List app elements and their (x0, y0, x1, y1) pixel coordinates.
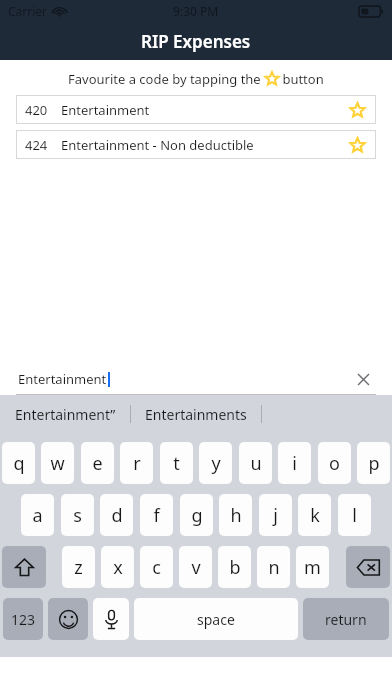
button[interactable]: g (180, 494, 213, 536)
staticText: Entertainments (145, 405, 247, 424)
button[interactable]: Favourite (347, 100, 367, 120)
button[interactable]: Backspace (346, 546, 390, 588)
staticText: d (111, 503, 123, 528)
button[interactable]: Dictation (93, 598, 129, 640)
staticText: RIP Expenses (141, 30, 251, 53)
staticText: r (133, 451, 141, 476)
button[interactable]: c (140, 546, 173, 588)
staticText: Entertainment (61, 101, 150, 119)
button[interactable]: n (257, 546, 290, 588)
button[interactable]: e (81, 442, 114, 484)
staticText: l (352, 503, 357, 528)
staticText: space (197, 610, 235, 629)
button[interactable]: p (357, 442, 390, 484)
button[interactable]: a (21, 494, 54, 536)
staticText: Favourite a code by tapping the (68, 70, 265, 88)
button[interactable]: 424 (16, 130, 376, 159)
staticText: a (32, 503, 43, 528)
button[interactable]: i (278, 442, 311, 484)
staticText: z (74, 555, 83, 580)
button[interactable]: space (134, 598, 298, 640)
staticText: button (279, 70, 324, 88)
staticText: 424 (25, 136, 48, 154)
button[interactable]: Entertainments (131, 395, 261, 433)
button[interactable]: Emoji (48, 598, 88, 640)
button[interactable]: x (101, 546, 134, 588)
button[interactable]: Entertainment” (0, 395, 130, 433)
staticText: 420 (25, 101, 48, 119)
staticText: b (229, 555, 241, 580)
staticText: q (13, 451, 25, 476)
button[interactable]: b (218, 546, 251, 588)
staticText: u (250, 451, 262, 476)
button[interactable]: l (338, 494, 371, 536)
button[interactable]: u (239, 442, 272, 484)
button[interactable]: f (140, 494, 173, 536)
button[interactable]: Shift (2, 546, 46, 588)
staticText: Entertainment” (15, 405, 116, 424)
staticText: t (173, 451, 180, 476)
button[interactable]: Favourite (347, 135, 367, 155)
staticText: j (273, 503, 278, 528)
staticText: k (310, 503, 320, 528)
button[interactable]: w (41, 442, 74, 484)
staticText: g (191, 503, 203, 528)
button[interactable]: q (2, 442, 35, 484)
staticText: 123 (11, 610, 36, 629)
button[interactable]: s (61, 494, 94, 536)
staticText: Carrier (8, 3, 48, 19)
button[interactable]: z (62, 546, 95, 588)
button[interactable]: o (318, 442, 351, 484)
staticText: w (50, 451, 65, 476)
staticText: h (230, 503, 242, 528)
staticText: y (211, 451, 221, 476)
staticText: p (368, 451, 380, 476)
staticText: return (325, 610, 367, 629)
button[interactable]: j (259, 494, 292, 536)
staticText: e (92, 451, 103, 476)
staticText: o (329, 451, 340, 476)
button[interactable]: t (160, 442, 193, 484)
button[interactable]: d (100, 494, 133, 536)
button[interactable]: v (179, 546, 212, 588)
button[interactable]: 420 (16, 95, 376, 124)
button[interactable]: m (296, 546, 329, 588)
button[interactable]: k (298, 494, 331, 536)
staticText: Entertainment - Non deductible (61, 136, 254, 154)
staticText: m (304, 555, 321, 580)
staticText: Entertainment (18, 370, 107, 388)
staticText: f (153, 503, 160, 528)
button[interactable]: 123 (3, 598, 43, 640)
button[interactable]: return (303, 598, 389, 640)
staticText: s (73, 503, 82, 528)
staticText: x (113, 555, 123, 580)
staticText: i (292, 451, 297, 476)
button[interactable]: y (199, 442, 232, 484)
staticText: n (268, 555, 280, 580)
button[interactable]: h (219, 494, 252, 536)
staticText: c (152, 555, 161, 580)
button[interactable]: r (120, 442, 153, 484)
staticText: 9:30 PM (173, 3, 219, 19)
staticText: v (191, 555, 201, 580)
button[interactable]: Clear text (352, 368, 374, 390)
